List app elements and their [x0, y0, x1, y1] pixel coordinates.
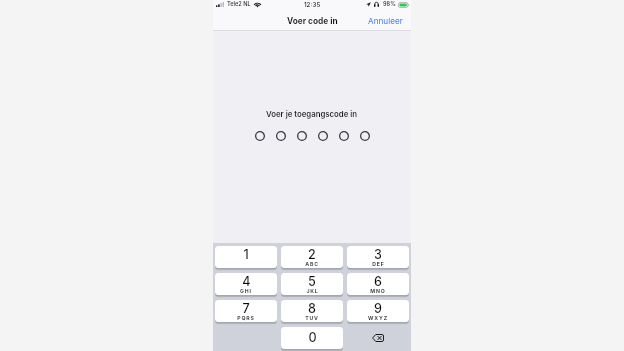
staticText: 98%	[383, 1, 396, 8]
staticText: ABC	[305, 261, 319, 267]
staticText: Tele2 NL	[227, 1, 251, 8]
staticText: 3	[374, 247, 382, 262]
button[interactable]: 5	[281, 273, 343, 295]
button[interactable]: 4	[215, 273, 277, 295]
button[interactable]: 3	[347, 246, 409, 268]
button[interactable]: Delete	[347, 327, 409, 349]
staticText: 6	[374, 274, 382, 289]
staticText: 4	[242, 274, 251, 289]
button[interactable]: 2	[281, 246, 343, 268]
button[interactable]: 1	[215, 246, 277, 268]
staticText: 1	[243, 247, 249, 262]
button[interactable]: Annuleer	[360, 13, 411, 29]
staticText: 8	[308, 301, 316, 316]
staticText: 2	[308, 247, 316, 262]
staticText: 12:35	[304, 1, 321, 9]
staticText: JKL	[306, 288, 319, 294]
button[interactable]: 0	[281, 327, 343, 349]
staticText: PQRS	[237, 315, 255, 321]
staticText: Voer je toegangscode in	[266, 109, 358, 118]
staticText: DEF	[372, 261, 385, 267]
staticText: 0	[308, 330, 317, 345]
staticText: Annuleer	[368, 16, 403, 26]
staticText: GHI	[240, 288, 252, 294]
button[interactable]: 8	[281, 300, 343, 322]
staticText: 7	[242, 301, 250, 316]
staticText: MNO	[370, 288, 386, 294]
button[interactable]: 7	[215, 300, 277, 322]
button[interactable]: 9	[347, 300, 409, 322]
staticText: 9	[374, 301, 382, 316]
staticText: TUV	[305, 315, 319, 321]
staticText: 5	[308, 274, 316, 289]
staticText: Voer code in	[287, 16, 338, 26]
staticText: WXYZ	[368, 315, 388, 321]
button[interactable]: 6	[347, 273, 409, 295]
